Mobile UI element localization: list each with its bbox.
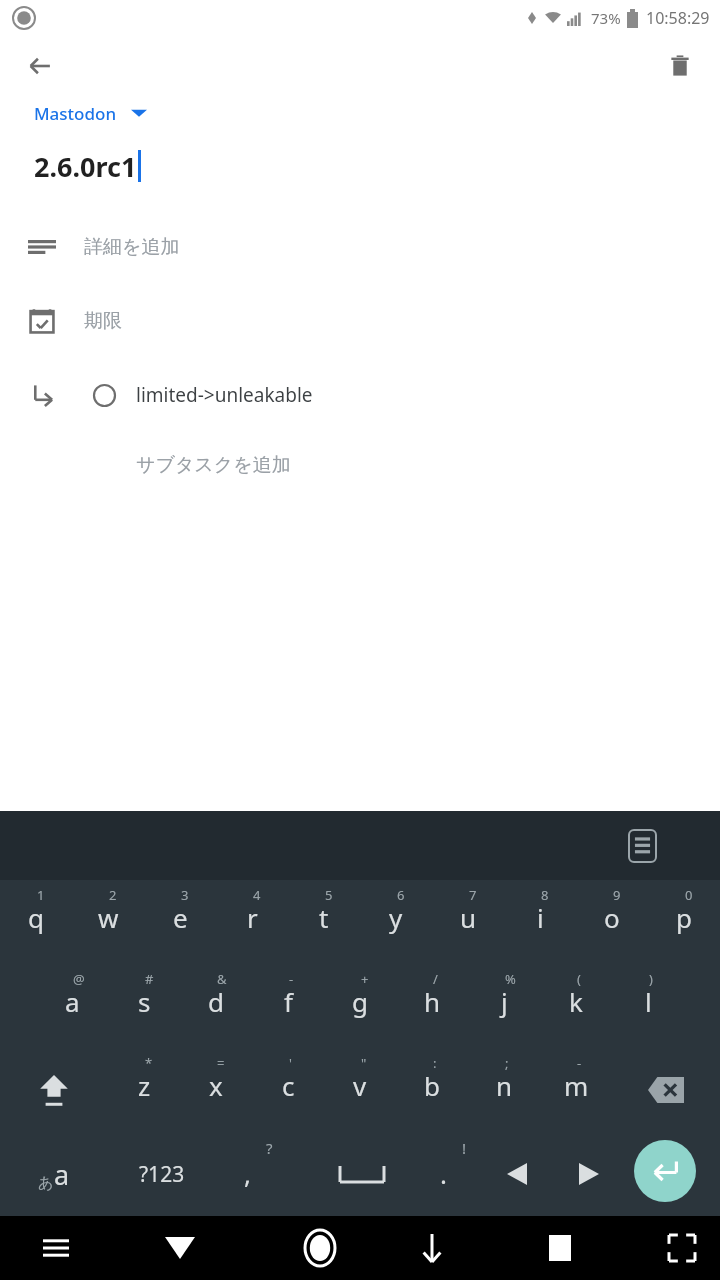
button[interactable]: @ — [36, 964, 108, 1048]
staticText: 2 — [109, 886, 117, 904]
button[interactable]: 詳細を追加 — [0, 210, 720, 284]
button[interactable]: ? — [216, 1132, 306, 1216]
button[interactable]: 8 — [504, 880, 576, 964]
button[interactable]: ' — [252, 1048, 324, 1132]
button[interactable]: Switch language — [0, 1132, 108, 1216]
staticText: 2.6.0rc1 — [34, 148, 137, 185]
staticText: あ — [38, 1174, 54, 1193]
staticText: + — [361, 970, 369, 988]
button[interactable]: Keyboard menu — [620, 824, 664, 868]
button[interactable]: 期限 — [0, 284, 720, 358]
button[interactable]: 6 — [360, 880, 432, 964]
staticText: l — [645, 984, 652, 1019]
staticText: * — [145, 1054, 153, 1072]
button[interactable]: Cursor left — [472, 1132, 562, 1216]
staticText: - — [577, 1054, 582, 1072]
button[interactable]: ?123 — [108, 1132, 216, 1216]
button[interactable]: = — [180, 1048, 252, 1132]
button[interactable]: 0 — [648, 880, 720, 964]
button[interactable]: / — [396, 964, 468, 1048]
button[interactable]: Backspace — [612, 1048, 720, 1132]
button[interactable]: ) — [612, 964, 684, 1048]
button[interactable]: Home — [288, 1216, 352, 1280]
staticText: " — [361, 1054, 367, 1072]
button[interactable]: Mark complete — [0, 358, 720, 432]
button[interactable]: 4 — [216, 880, 288, 964]
staticText: Mastodon — [34, 102, 117, 125]
staticText: , — [244, 1156, 251, 1191]
button[interactable]: 7 — [432, 880, 504, 964]
staticText: v — [353, 1068, 367, 1103]
button[interactable]: Recent apps — [528, 1216, 592, 1280]
staticText: b — [424, 1068, 440, 1103]
button[interactable]: * — [108, 1048, 180, 1132]
button[interactable]: & — [180, 964, 252, 1048]
button[interactable]: Mark complete — [84, 375, 124, 415]
button[interactable]: 3 — [144, 880, 216, 964]
staticText: u — [460, 900, 477, 935]
staticText: - — [289, 970, 294, 988]
staticText: y — [389, 900, 403, 935]
staticText: / — [433, 970, 438, 988]
button[interactable]: 1 — [0, 880, 72, 964]
staticText: 73% — [591, 8, 621, 28]
staticText: i — [537, 900, 544, 935]
staticText: ! — [462, 1138, 467, 1158]
staticText: r — [247, 900, 258, 935]
button[interactable]: Menu — [24, 1216, 88, 1280]
staticText: x — [209, 1068, 223, 1103]
button[interactable]: : — [396, 1048, 468, 1132]
staticText: c — [282, 1068, 295, 1103]
staticText: ? — [266, 1138, 273, 1158]
staticText: 期限 — [84, 309, 122, 333]
button[interactable]: - — [540, 1048, 612, 1132]
button[interactable]: % — [468, 964, 540, 1048]
button[interactable]: Hide keyboard — [400, 1216, 464, 1280]
button[interactable]: Back — [148, 1216, 212, 1280]
staticText: 8 — [541, 886, 549, 904]
staticText: q — [28, 900, 44, 935]
button[interactable]: Cursor right — [544, 1132, 634, 1216]
button[interactable]: Delete — [656, 42, 704, 90]
staticText: 5 — [325, 886, 333, 904]
staticText: 詳細を追加 — [84, 235, 180, 259]
button[interactable]: Full screen — [650, 1216, 714, 1280]
button[interactable]: Shift — [0, 1048, 108, 1132]
staticText: p — [676, 900, 692, 935]
staticText: 1 — [37, 886, 45, 904]
button[interactable]: " — [324, 1048, 396, 1132]
button[interactable]: ! — [418, 1132, 508, 1216]
staticText: 3 — [181, 886, 189, 904]
staticText: n — [496, 1068, 513, 1103]
button[interactable]: ( — [540, 964, 612, 1048]
staticText: o — [604, 900, 620, 935]
button[interactable]: Enter — [634, 1140, 696, 1202]
button[interactable]: - — [252, 964, 324, 1048]
button[interactable]: Mastodon — [34, 96, 147, 130]
staticText: 4 — [253, 886, 261, 904]
button[interactable]: 2 — [72, 880, 144, 964]
staticText: 0 — [685, 886, 693, 904]
staticText: 10:58:29 — [646, 7, 710, 29]
staticText: サブタスクを追加 — [136, 453, 291, 477]
staticText: % — [505, 970, 516, 988]
button[interactable]: Space — [306, 1132, 418, 1216]
staticText: w — [98, 900, 119, 935]
staticText: 6 — [397, 886, 405, 904]
button[interactable]: サブタスクを追加 — [0, 432, 720, 498]
staticText: @ — [73, 970, 85, 988]
button[interactable]: Back — [16, 42, 64, 90]
button[interactable]: # — [108, 964, 180, 1048]
staticText: ) — [649, 970, 653, 988]
staticText: & — [217, 970, 227, 988]
button[interactable]: + — [324, 964, 396, 1048]
staticText: a — [54, 1156, 70, 1193]
staticText: ; — [505, 1054, 509, 1072]
button[interactable]: ; — [468, 1048, 540, 1132]
staticText: t — [319, 900, 329, 935]
button[interactable]: 9 — [576, 880, 648, 964]
staticText: s — [138, 984, 151, 1019]
staticText: m — [564, 1068, 589, 1103]
staticText: g — [352, 984, 368, 1019]
button[interactable]: 5 — [288, 880, 360, 964]
